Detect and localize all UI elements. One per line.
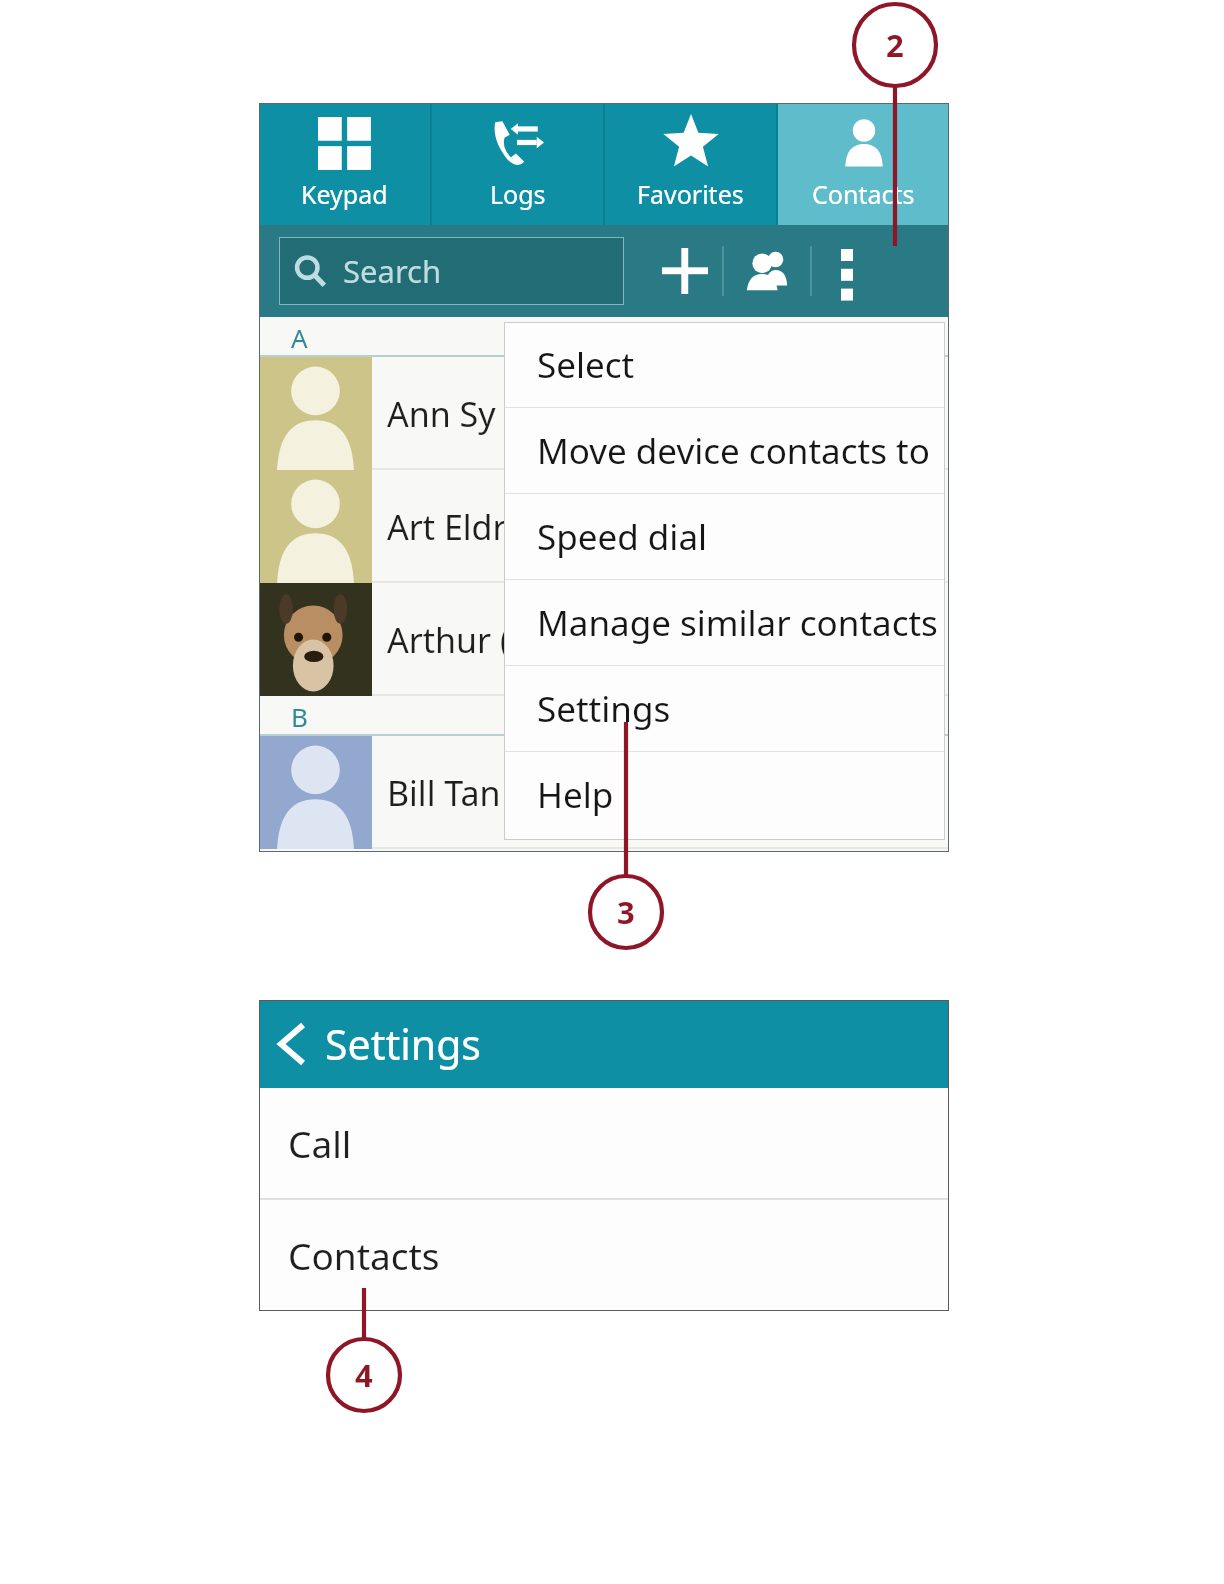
staticText: B [291,699,308,734]
staticText: 4 [355,1354,373,1396]
button[interactable]: Art Eldr [259,470,949,583]
button[interactable]: Favorites [605,103,776,225]
staticText: Contacts [812,177,915,211]
button[interactable]: Help [504,752,945,838]
staticText: 2 [886,24,904,66]
button[interactable]: Ann Sy [259,357,949,470]
staticText: Keypad [301,177,388,211]
staticText: Manage similar contacts [537,599,938,647]
button[interactable]: Settings [504,666,945,752]
staticText: Settings [325,1016,482,1072]
staticText: Favorites [637,177,744,211]
button[interactable]: More options [812,236,882,306]
staticText: Call [288,1118,352,1168]
staticText: Move device contacts to [537,427,930,475]
button[interactable]: Groups [724,228,810,314]
staticText: Ann Sy [387,391,496,437]
staticText: Settings [537,685,671,733]
staticText: Speed dial [537,513,708,561]
staticText: Logs [490,177,546,211]
button[interactable]: Select [504,322,945,408]
button[interactable]: Speed dial [504,494,945,580]
staticText: Select [537,341,635,389]
button[interactable]: Contacts [259,1200,949,1310]
button[interactable]: Arthur ( [259,583,949,696]
other: Back [281,1025,307,1063]
button[interactable]: Manage similar contacts [504,580,945,666]
button[interactable]: Add contact [648,234,722,308]
staticText: Help [537,771,614,819]
button[interactable]: Move device contacts to [504,408,945,494]
button[interactable]: Bill Tan [259,736,949,849]
staticText: Search [343,250,442,292]
button[interactable]: Back [259,1000,949,1088]
button[interactable]: Call [259,1088,949,1198]
staticText: Bill Tan [387,770,501,816]
button[interactable]: Contacts [778,103,949,225]
button[interactable]: Keypad [259,103,430,225]
button[interactable]: Logs [432,103,603,225]
staticText: Contacts [288,1230,440,1280]
staticText: Arthur ( [387,617,511,663]
staticText: 3 [617,891,635,933]
button[interactable]: Search [279,237,624,305]
staticText: Art Eldr [387,504,507,550]
staticText: A [291,320,308,355]
